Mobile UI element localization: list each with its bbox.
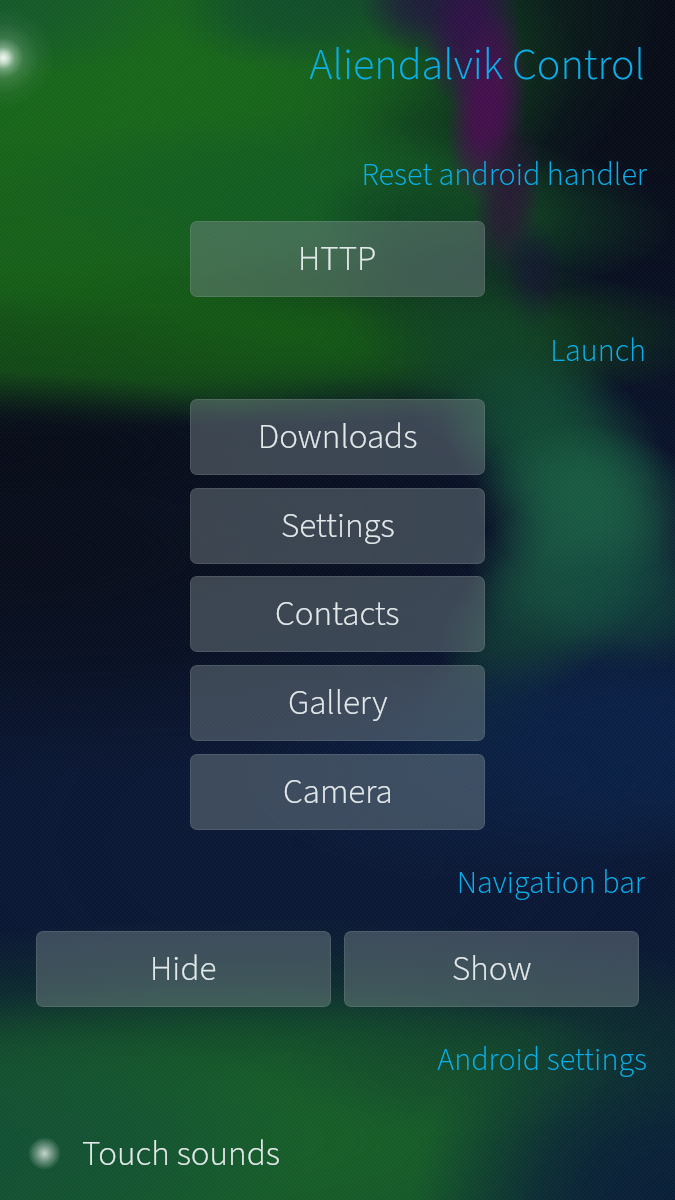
button[interactable]: Settings — [190, 488, 485, 564]
staticText: Launch — [0, 328, 646, 1200]
button[interactable]: Downloads — [190, 399, 485, 475]
button[interactable]: Camera — [190, 754, 485, 830]
button[interactable]: HTTP — [190, 221, 485, 297]
button[interactable]: Hide — [36, 931, 331, 1007]
staticText: Settings — [281, 501, 395, 551]
button[interactable]: Gallery — [190, 665, 485, 741]
staticText: Aliendalvik Control — [0, 34, 645, 1200]
staticText: Downloads — [258, 412, 418, 462]
staticText: Gallery — [288, 678, 388, 728]
staticText: Show — [452, 944, 532, 994]
button[interactable]: Show — [344, 931, 639, 1007]
staticText: Touch sounds — [82, 1129, 280, 1179]
other: Touch sounds toggle — [28, 1137, 61, 1170]
staticText: Android settings — [0, 1037, 647, 1200]
staticText: Reset android handler — [0, 152, 647, 1200]
button[interactable]: Touch sounds toggle — [0, 1118, 675, 1190]
staticText: Hide — [150, 944, 217, 994]
staticText: Camera — [283, 767, 393, 817]
button[interactable]: Contacts — [190, 576, 485, 652]
staticText: HTTP — [298, 234, 377, 284]
staticText: Navigation bar — [0, 860, 645, 1200]
staticText: Contacts — [275, 589, 400, 639]
